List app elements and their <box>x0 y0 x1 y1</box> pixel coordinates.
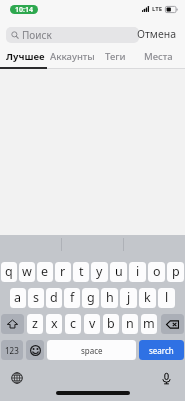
button[interactable]: d <box>46 288 62 308</box>
button[interactable]: b <box>103 314 119 334</box>
button[interactable]: Shift <box>1 314 24 334</box>
button[interactable]: s <box>28 288 44 308</box>
button[interactable]: t <box>73 262 89 282</box>
staticText: search <box>149 345 174 356</box>
button[interactable]: Emoji <box>26 340 44 360</box>
staticText: z <box>32 315 38 332</box>
staticText: n <box>126 315 134 332</box>
staticText: w <box>22 263 32 280</box>
staticText: b <box>107 315 115 332</box>
staticText: Аккаунты <box>50 50 95 63</box>
staticText: LTE <box>152 5 163 13</box>
button[interactable]: c <box>65 314 81 334</box>
button[interactable]: Change keyboard <box>8 369 26 387</box>
staticText: 10:14 <box>15 5 33 14</box>
staticText: t <box>79 263 84 280</box>
staticText: c <box>70 315 77 332</box>
staticText: f <box>70 289 75 306</box>
staticText: v <box>89 315 96 332</box>
staticText: k <box>144 289 151 306</box>
button[interactable]: y <box>91 262 108 282</box>
button[interactable]: k <box>139 288 156 308</box>
staticText: j <box>127 289 131 306</box>
button[interactable]: e <box>37 262 53 282</box>
button[interactable]: space <box>47 340 136 360</box>
staticText: e <box>41 263 49 280</box>
staticText: a <box>14 289 22 306</box>
staticText: Отмена <box>137 27 177 41</box>
button[interactable]: u <box>110 262 127 282</box>
staticText: Поиск <box>22 28 52 42</box>
button[interactable]: h <box>101 288 118 308</box>
button[interactable]: Dictation <box>157 369 176 388</box>
staticText: r <box>60 263 66 280</box>
staticText: m <box>143 315 155 332</box>
button[interactable]: n <box>122 314 138 334</box>
button[interactable]: p <box>167 262 184 282</box>
button[interactable]: Отмена <box>133 23 185 45</box>
button[interactable]: x <box>46 314 62 334</box>
staticText: o <box>153 263 161 280</box>
button[interactable]: g <box>82 288 99 308</box>
staticText: u <box>115 263 123 280</box>
button[interactable]: o <box>148 262 165 282</box>
staticText: 123 <box>5 345 19 356</box>
staticText: Места <box>144 50 173 63</box>
button[interactable]: Лучшее <box>1 44 49 69</box>
staticText: p <box>172 263 180 280</box>
staticText: i <box>136 263 140 280</box>
button[interactable]: z <box>27 314 43 334</box>
staticText: g <box>87 289 95 306</box>
button[interactable]: l <box>158 288 175 308</box>
staticText: Теги <box>105 50 126 63</box>
button[interactable]: w <box>19 262 35 282</box>
staticText: space <box>81 345 103 356</box>
button[interactable]: q <box>1 262 17 282</box>
button[interactable]: Backspace <box>161 314 184 334</box>
button[interactable]: Теги <box>91 44 139 69</box>
button[interactable]: j <box>120 288 137 308</box>
button[interactable]: a <box>10 288 26 308</box>
button[interactable]: Поиск <box>6 27 139 43</box>
button[interactable]: search <box>139 340 184 360</box>
button[interactable]: r <box>55 262 71 282</box>
staticText: d <box>50 289 58 306</box>
staticText: l <box>165 289 169 306</box>
staticText: Лучшее <box>6 50 45 63</box>
button[interactable]: Места <box>134 44 182 69</box>
staticText: s <box>33 289 39 306</box>
button[interactable]: Аккаунты <box>48 44 96 69</box>
staticText: x <box>51 315 58 332</box>
button[interactable]: 123 <box>1 340 23 360</box>
button[interactable]: m <box>141 314 157 334</box>
staticText: y <box>96 263 103 280</box>
button[interactable]: v <box>84 314 100 334</box>
staticText: h <box>106 289 114 306</box>
button[interactable]: f <box>64 288 80 308</box>
staticText: q <box>5 263 13 280</box>
button[interactable]: i <box>129 262 146 282</box>
